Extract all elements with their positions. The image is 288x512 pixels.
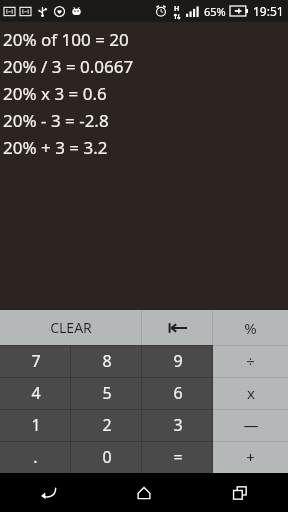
button[interactable]: 2 (71, 409, 142, 441)
staticText: x (247, 383, 255, 403)
staticText: 4 (31, 382, 41, 404)
button[interactable]: 5 (71, 377, 142, 409)
button[interactable]: . (0, 441, 71, 473)
staticText: 65% (204, 4, 226, 19)
staticText: 20% / 3 = 0.0667 (3, 55, 134, 78)
staticText: 5 (102, 382, 112, 404)
button[interactable]: — (213, 409, 288, 441)
button[interactable]: Home (96, 473, 192, 512)
button[interactable]: Recent apps (192, 473, 288, 512)
button[interactable]: Backspace (142, 310, 213, 345)
staticText: 2 (102, 414, 112, 436)
button[interactable]: 1 (0, 409, 71, 441)
staticText: 6 (173, 382, 183, 404)
button[interactable]: x (213, 377, 288, 409)
staticText: 20% + 3 = 3.2 (3, 136, 108, 159)
button[interactable]: 3 (142, 409, 213, 441)
staticText: H (174, 4, 180, 14)
button[interactable]: 8 (71, 345, 142, 377)
staticText: 1 (31, 414, 41, 436)
staticText: — (243, 415, 259, 435)
button[interactable]: 6 (142, 377, 213, 409)
button[interactable]: + (213, 441, 288, 473)
staticText: + (246, 447, 255, 467)
button[interactable]: = (142, 441, 213, 473)
button[interactable]: 9 (142, 345, 213, 377)
staticText: . (33, 446, 38, 468)
staticText: % (244, 318, 257, 338)
staticText: 9 (173, 350, 183, 372)
button[interactable]: 4 (0, 377, 71, 409)
staticText: = (173, 446, 183, 468)
staticText: 8 (102, 350, 112, 372)
staticText: 0 (102, 446, 112, 468)
staticText: 20% of 100 = 20 (3, 28, 129, 51)
button[interactable]: % (213, 310, 288, 345)
staticText: 20% - 3 = -2.8 (3, 109, 109, 132)
button[interactable]: CLEAR (0, 310, 142, 345)
staticText: 20% x 3 = 0.6 (3, 82, 107, 105)
button[interactable]: 0 (71, 441, 142, 473)
staticText: 3 (173, 414, 183, 436)
button[interactable]: 7 (0, 345, 71, 377)
staticText: CLEAR (50, 318, 92, 337)
button[interactable]: ÷ (213, 345, 288, 377)
button[interactable]: Back (0, 473, 96, 512)
staticText: 7 (31, 350, 41, 372)
staticText: ÷ (246, 351, 255, 371)
staticText: 19:51 (253, 3, 284, 19)
